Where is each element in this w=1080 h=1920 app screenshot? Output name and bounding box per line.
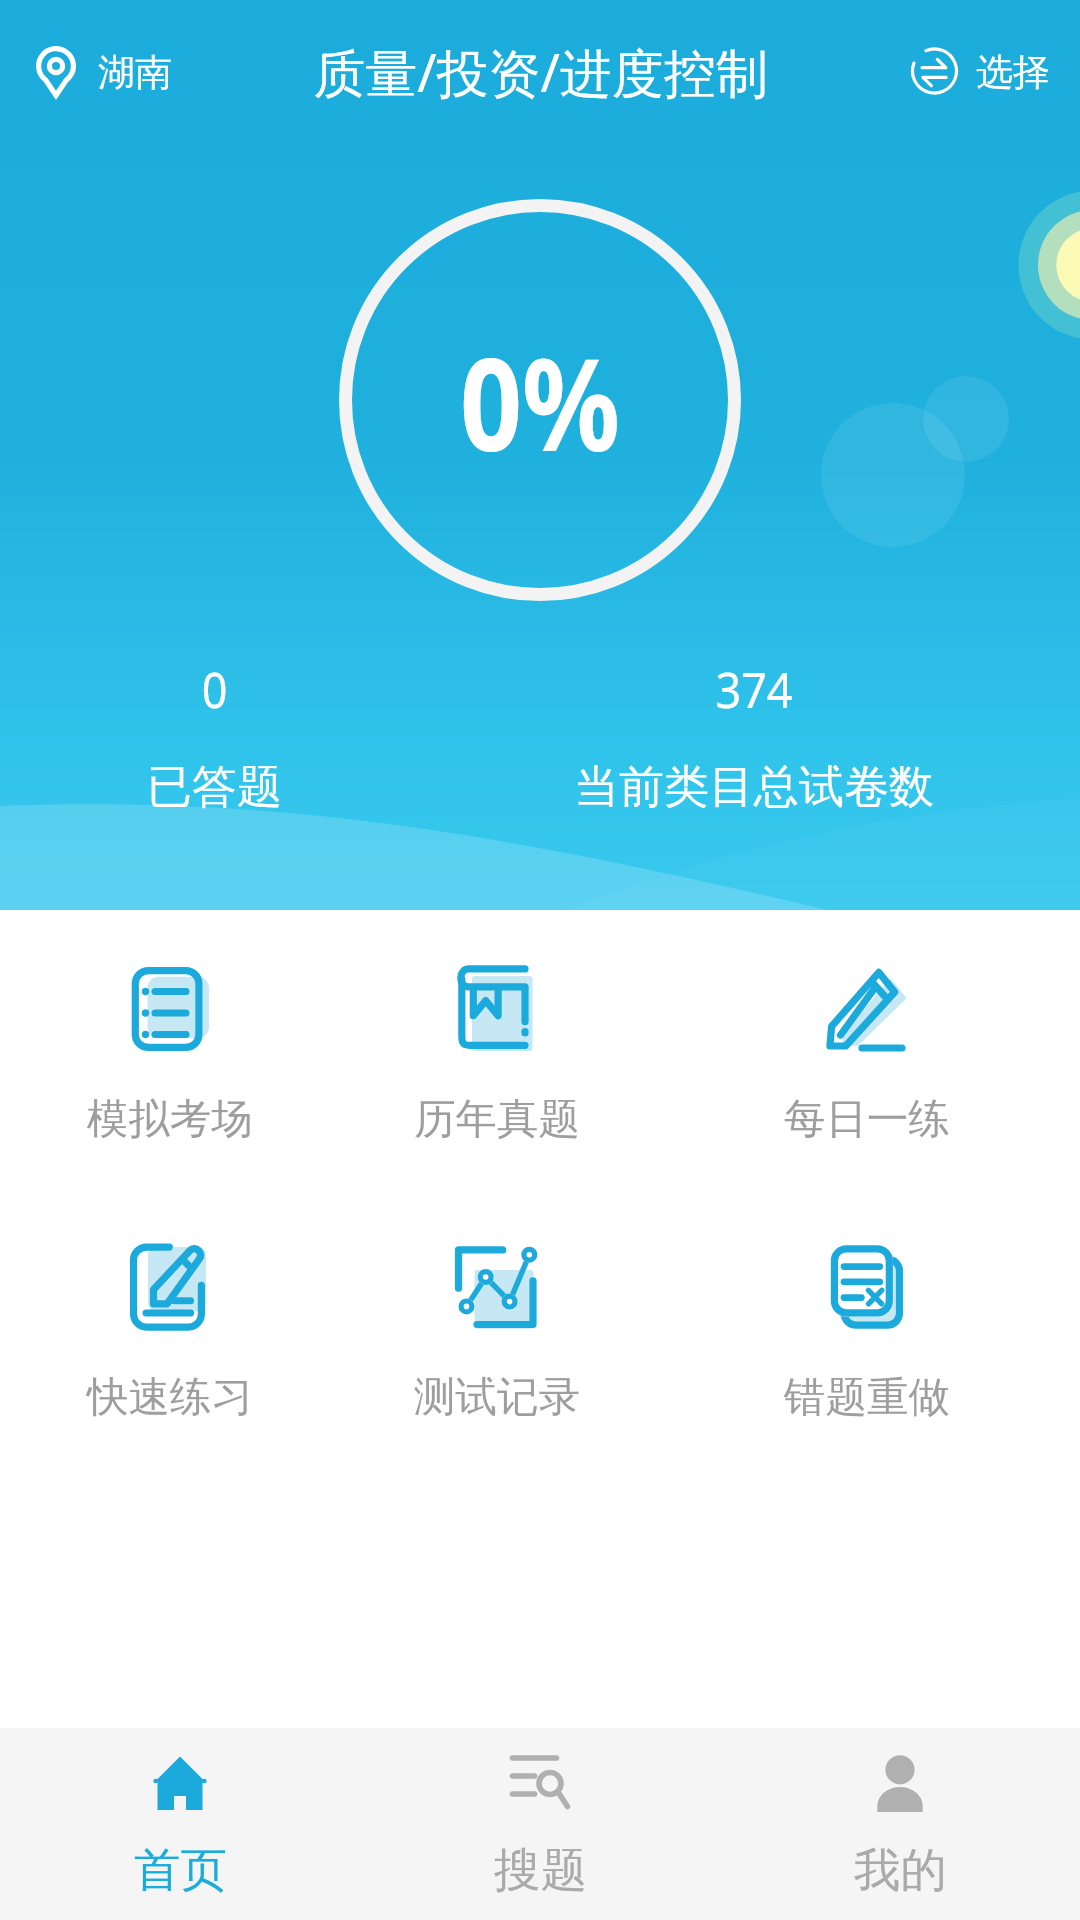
staticText: 每日一练 [757, 1093, 977, 1145]
staticText: 错题重做 [757, 1371, 977, 1423]
button[interactable]: 湖南 [0, 38, 184, 106]
button[interactable]: 选择 [898, 39, 1080, 105]
staticText: 湖南 [98, 49, 172, 96]
staticText: 当前类目总试卷数 [574, 759, 934, 816]
staticText: 测试记录 [387, 1371, 607, 1423]
staticText: 我的 [854, 1841, 947, 1900]
staticText: 首页 [134, 1841, 227, 1900]
button[interactable]: 首页 [0, 1728, 360, 1920]
staticText: 374 [715, 655, 793, 723]
staticText: 模拟考场 [60, 1093, 280, 1145]
staticText: 0 [201, 655, 227, 723]
staticText: 选择 [976, 49, 1050, 96]
button[interactable]: 测试记录 [387, 1228, 607, 1404]
button[interactable]: 快速练习 [60, 1228, 280, 1404]
staticText: 搜题 [494, 1841, 587, 1900]
button[interactable]: 我的 [720, 1728, 1080, 1920]
staticText: 历年真题 [387, 1093, 607, 1145]
button[interactable]: 每日一练 [757, 949, 977, 1125]
staticText: 质量/投资/进度控制 [313, 36, 768, 107]
button[interactable]: 模拟考场 [60, 949, 280, 1125]
staticText: 0% [460, 315, 620, 488]
button[interactable]: 搜题 [360, 1728, 720, 1920]
button[interactable]: 错题重做 [757, 1228, 977, 1404]
staticText: 快速练习 [60, 1371, 280, 1423]
staticText: 已答题 [147, 759, 282, 816]
button[interactable]: 历年真题 [387, 949, 607, 1125]
